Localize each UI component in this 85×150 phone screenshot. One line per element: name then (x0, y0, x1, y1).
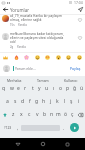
button[interactable]: x (17, 108, 25, 121)
staticText: s (14, 98, 17, 105)
staticText: Tamam (37, 78, 49, 83)
button[interactable]: Send (70, 123, 79, 132)
staticText: n (50, 111, 54, 118)
staticText: k (56, 98, 59, 105)
button[interactable]: p (64, 82, 71, 95)
button[interactable]: ?123 (1, 121, 15, 134)
button[interactable]: ö (62, 108, 69, 121)
staticText: ğ (73, 85, 77, 92)
button[interactable]: React (1, 53, 10, 62)
button[interactable]: h (40, 95, 47, 108)
staticText: ı (53, 85, 55, 92)
button[interactable]: React (22, 53, 31, 62)
staticText: mefkuzeliSonuna kadar katılıyorum, (10, 32, 64, 36)
button[interactable]: ç (69, 108, 76, 121)
button[interactable]: g (33, 95, 40, 108)
staticText: z (12, 111, 15, 118)
button[interactable]: Paylaş (69, 64, 82, 73)
staticText: Merhaba (7, 78, 22, 83)
button[interactable]: Kullanıcı (57, 76, 85, 84)
staticText: u (45, 85, 49, 92)
button[interactable]: , (15, 121, 21, 134)
button[interactable]: c (25, 108, 33, 121)
button[interactable]: f (26, 95, 33, 108)
button[interactable]: o (57, 82, 64, 95)
staticText: g (35, 98, 39, 105)
button[interactable]: . (61, 121, 67, 134)
button[interactable]: Recents (61, 138, 73, 150)
staticText: l (64, 98, 66, 105)
button[interactable]: Like (76, 16, 83, 23)
staticText: a (6, 98, 9, 105)
staticText: ç (71, 111, 74, 118)
button[interactable]: s (11, 95, 19, 108)
button[interactable]: React (33, 53, 42, 62)
staticText: ö (64, 111, 68, 118)
button[interactable]: k (54, 95, 61, 108)
staticText: ?123 (4, 125, 12, 130)
button[interactable]: ı (50, 82, 57, 95)
staticText: w (10, 85, 14, 92)
button[interactable]: ğ (71, 82, 78, 95)
button[interactable]: q (0, 82, 8, 95)
button[interactable]: r (22, 82, 29, 95)
button[interactable]: Merhaba (0, 76, 29, 84)
staticText: e (17, 85, 20, 92)
staticText: x (20, 111, 23, 118)
button[interactable]: React (64, 53, 73, 62)
staticText: 17:04 (74, 0, 83, 5)
button[interactable]: ş (68, 95, 75, 108)
button[interactable]: React (54, 53, 63, 62)
button[interactable]: Like (76, 34, 83, 41)
button[interactable]: w (8, 82, 15, 95)
button[interactable]: u (43, 82, 50, 95)
button[interactable]: y (36, 82, 43, 95)
staticText: i (78, 98, 80, 105)
staticText: Yorum ekle... (15, 66, 36, 71)
button[interactable]: n (48, 108, 55, 121)
button[interactable]: b (41, 108, 48, 121)
staticText: 2g (10, 45, 14, 49)
staticText: ş (70, 98, 73, 105)
button[interactable]: v (33, 108, 41, 121)
staticText: y (38, 85, 41, 92)
staticText: b (43, 111, 47, 118)
staticText: j (50, 98, 52, 105)
button[interactable]: m (55, 108, 62, 121)
button[interactable]: React (43, 53, 52, 62)
button[interactable]: Home (37, 138, 49, 150)
button[interactable]: Back (0, 5, 10, 14)
button[interactable]: Tamam (29, 76, 57, 84)
button[interactable]: j (47, 95, 54, 108)
staticText: d (21, 98, 25, 105)
staticText: Paylaş (70, 66, 81, 71)
button[interactable]: d (19, 95, 26, 108)
button[interactable]: z (9, 108, 17, 121)
button[interactable]: ü (78, 82, 85, 95)
staticText: c (28, 111, 31, 118)
button[interactable]: React (75, 53, 84, 62)
button[interactable]: Backspace (76, 108, 85, 121)
staticText: ü (80, 85, 84, 92)
staticText: cok! (10, 40, 17, 44)
button[interactable]: e (15, 82, 22, 95)
button[interactable]: Shift (0, 108, 9, 121)
staticText: h (42, 98, 46, 105)
staticText: q (2, 85, 6, 92)
staticText: f (29, 98, 31, 105)
staticText: Yanıtla (18, 23, 27, 27)
staticText: olmuş, ellerine sağlık (10, 18, 42, 22)
staticText: Kullanıcı (64, 78, 78, 83)
button[interactable]: React (12, 53, 21, 62)
button[interactable]: i (75, 95, 82, 108)
staticText: t (32, 85, 34, 92)
staticText: m (56, 111, 61, 118)
button[interactable]: l (61, 95, 68, 108)
staticText: Yorumlar (10, 7, 29, 13)
button[interactable]: t (29, 82, 36, 95)
button[interactable]: Back (12, 138, 24, 150)
staticText: 15s (10, 23, 15, 27)
button[interactable]: Share (75, 5, 85, 14)
button[interactable]: a (3, 95, 11, 108)
